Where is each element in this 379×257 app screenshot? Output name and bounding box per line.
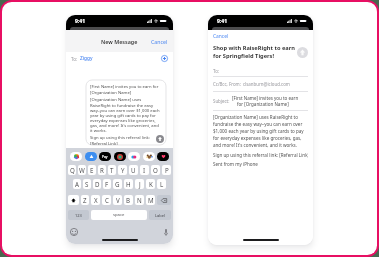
- button[interactable]: P: [162, 165, 171, 175]
- staticText: Cancel: [151, 38, 168, 45]
- staticText: Z: [83, 196, 87, 204]
- button[interactable]: Add contact: [161, 55, 168, 62]
- button[interactable]: G: [113, 179, 122, 189]
- button[interactable]: R: [98, 165, 106, 175]
- button[interactable]: Pay: [99, 152, 111, 161]
- staticText: Q: [70, 166, 75, 174]
- button[interactable]: B: [124, 195, 133, 205]
- button[interactable]: Dictate: [164, 229, 168, 236]
- button[interactable]: C: [102, 195, 111, 205]
- button[interactable]: N: [135, 195, 144, 205]
- button[interactable]: S: [83, 179, 91, 189]
- staticText: 9:41: [75, 18, 85, 25]
- button[interactable]: [157, 152, 169, 161]
- button[interactable]: Send: [297, 47, 308, 58]
- staticText: H: [126, 180, 131, 188]
- button[interactable]: K: [146, 179, 155, 189]
- button[interactable]: W: [78, 165, 86, 175]
- staticText: X: [94, 196, 98, 204]
- button[interactable]: Z: [81, 195, 89, 205]
- staticText: To:: [213, 68, 219, 74]
- button[interactable]: [128, 152, 140, 161]
- staticText: V: [116, 196, 120, 204]
- staticText: Label: [155, 213, 166, 218]
- staticText: A: [75, 180, 79, 188]
- button[interactable]: [114, 152, 126, 161]
- staticText: Sign up using this referral link: [Refer…: [213, 152, 308, 158]
- staticText: M: [148, 196, 154, 204]
- staticText: O: [153, 166, 158, 174]
- staticText: D: [95, 180, 100, 188]
- staticText: Y: [121, 166, 125, 174]
- button[interactable]: A: [73, 179, 81, 189]
- button[interactable]: Q: [68, 165, 76, 175]
- button[interactable]: Y: [118, 165, 127, 175]
- button[interactable]: L: [157, 179, 166, 189]
- staticText: for [Organization Name]: [237, 101, 289, 107]
- button[interactable]: U: [129, 165, 138, 175]
- staticText: [Organization Name] uses RaiseRight to f…: [90, 97, 161, 133]
- staticText: L: [160, 180, 164, 188]
- button[interactable]: [85, 152, 97, 161]
- staticText: Ziggy: [80, 55, 93, 62]
- staticText: To:: [71, 56, 78, 62]
- staticText: 123: [75, 213, 82, 218]
- staticText: G: [115, 180, 120, 188]
- button[interactable]: D: [93, 179, 101, 189]
- button[interactable]: M: [146, 195, 155, 205]
- staticText: B: [126, 196, 131, 204]
- staticText: N: [137, 196, 142, 204]
- staticText: F: [105, 180, 109, 188]
- button[interactable]: I: [140, 165, 149, 175]
- staticText: U: [131, 166, 136, 174]
- button[interactable]: F: [103, 179, 111, 189]
- staticText: [First Name] invites you to earn for [Or…: [90, 84, 161, 95]
- staticText: [Organization Name] uses RaiseRight to f…: [213, 114, 308, 148]
- button[interactable]: X: [91, 195, 100, 205]
- staticText: Pay: [102, 155, 108, 159]
- button[interactable]: 123: [68, 210, 89, 220]
- staticText: S: [85, 180, 89, 188]
- staticText: R: [100, 166, 104, 174]
- staticText: [First Name] invites you to earn: [232, 95, 299, 101]
- staticText: Shop with RaiseRight to earn for Springf…: [213, 44, 295, 60]
- staticText: E: [90, 166, 94, 174]
- staticText: P: [165, 166, 169, 174]
- button[interactable]: O: [151, 165, 160, 175]
- staticText: Cancel: [213, 33, 229, 40]
- staticText: W: [79, 166, 85, 174]
- button[interactable]: Emoji: [70, 228, 78, 236]
- staticText: Subject:: [213, 98, 230, 104]
- staticText: Sent from my iPhone: [213, 161, 258, 167]
- button[interactable]: [143, 152, 155, 161]
- button[interactable]: V: [113, 195, 122, 205]
- staticText: clsanburn@icloud.com: [243, 81, 290, 87]
- button[interactable]: Shift: [68, 195, 79, 205]
- staticText: I: [143, 166, 146, 174]
- button[interactable]: Cancel: [151, 38, 168, 45]
- button[interactable]: Cancel: [213, 33, 229, 40]
- staticText: Cc/Bcc, From:: [213, 81, 241, 87]
- staticText: 9:41: [217, 18, 227, 25]
- button[interactable]: space: [91, 210, 147, 220]
- staticText: T: [110, 166, 114, 174]
- button[interactable]: J: [135, 179, 144, 189]
- button[interactable]: [70, 152, 82, 161]
- staticText: space: [113, 212, 125, 218]
- button[interactable]: Send: [156, 135, 164, 143]
- button[interactable]: Label: [149, 210, 171, 220]
- button[interactable]: T: [108, 165, 116, 175]
- button[interactable]: Backspace: [157, 195, 171, 205]
- staticText: New Message: [101, 38, 138, 45]
- staticText: K: [149, 180, 153, 188]
- staticText: Sign up using this referral link: [Refer…: [90, 135, 161, 145]
- staticText: J: [139, 180, 141, 188]
- button[interactable]: E: [88, 165, 96, 175]
- staticText: C: [105, 196, 109, 204]
- button[interactable]: H: [124, 179, 133, 189]
